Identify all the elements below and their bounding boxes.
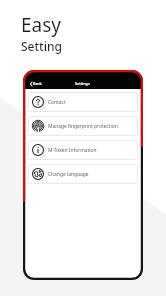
button[interactable]: M-Token information <box>28 140 138 160</box>
staticText: Back <box>33 81 42 86</box>
other: Contact <box>32 96 44 108</box>
staticText: Easy <box>21 12 62 38</box>
staticText: Settings <box>75 81 90 86</box>
button[interactable]: Change language <box>28 164 138 184</box>
button[interactable]: Contact <box>28 92 138 112</box>
other: M-Token information <box>32 144 44 156</box>
staticText: M-Token Information <box>48 147 97 154</box>
staticText: Contact <box>48 99 66 106</box>
button[interactable]: Fingerprint <box>28 116 138 136</box>
button[interactable]: Back <box>25 79 47 88</box>
staticText: Setting <box>21 38 62 54</box>
other: Change language <box>32 168 44 180</box>
other: Fingerprint <box>32 120 44 132</box>
staticText: Manage fingerprint protection <box>48 123 118 130</box>
staticText: Change language <box>48 171 89 178</box>
